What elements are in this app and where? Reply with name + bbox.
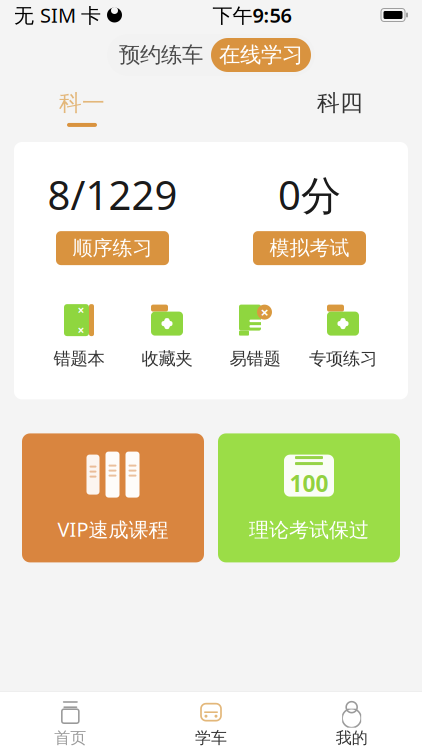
staticText: 顺序练习: [72, 236, 152, 260]
button[interactable]: 专项练习: [299, 303, 387, 369]
button[interactable]: VIP速成课程: [22, 433, 204, 562]
button[interactable]: 预约练车: [111, 38, 211, 72]
staticText: ×: [77, 302, 84, 318]
staticText: 8/1229: [47, 168, 177, 221]
staticText: 100: [289, 468, 328, 498]
button[interactable]: 收藏夹: [123, 303, 211, 369]
staticText: 预约练车: [119, 42, 203, 68]
button[interactable]: 顺序练习: [56, 231, 169, 265]
button[interactable]: ×: [35, 303, 123, 369]
staticText: 我的: [336, 728, 368, 748]
staticText: 在线学习: [219, 42, 303, 68]
staticText: 无 SIM 卡: [14, 2, 101, 28]
staticText: 科一: [59, 89, 105, 117]
button[interactable]: ×: [211, 303, 299, 369]
button[interactable]: 学车: [141, 694, 281, 748]
staticText: 下午9:56: [212, 2, 291, 28]
staticText: ×: [77, 322, 84, 338]
staticText: 错题本: [53, 348, 104, 369]
staticText: 专项练习: [309, 348, 377, 369]
staticText: 0分: [278, 168, 341, 221]
staticText: 理论考试保过: [249, 518, 369, 542]
staticText: VIP速成课程: [57, 516, 168, 542]
button[interactable]: 首页: [0, 694, 141, 748]
button[interactable]: 科四: [280, 86, 400, 130]
staticText: 科四: [317, 89, 363, 117]
button[interactable]: 在线学习: [211, 38, 311, 72]
button[interactable]: 100: [218, 433, 400, 562]
staticText: 易错题: [229, 348, 280, 369]
button[interactable]: 我的: [281, 694, 422, 748]
staticText: 首页: [54, 728, 86, 748]
staticText: ×: [260, 302, 268, 322]
staticText: 收藏夹: [141, 348, 192, 369]
staticText: 模拟考试: [269, 236, 349, 260]
button[interactable]: 模拟考试: [253, 231, 366, 265]
staticText: 学车: [195, 728, 227, 748]
button[interactable]: 科一: [22, 86, 142, 130]
